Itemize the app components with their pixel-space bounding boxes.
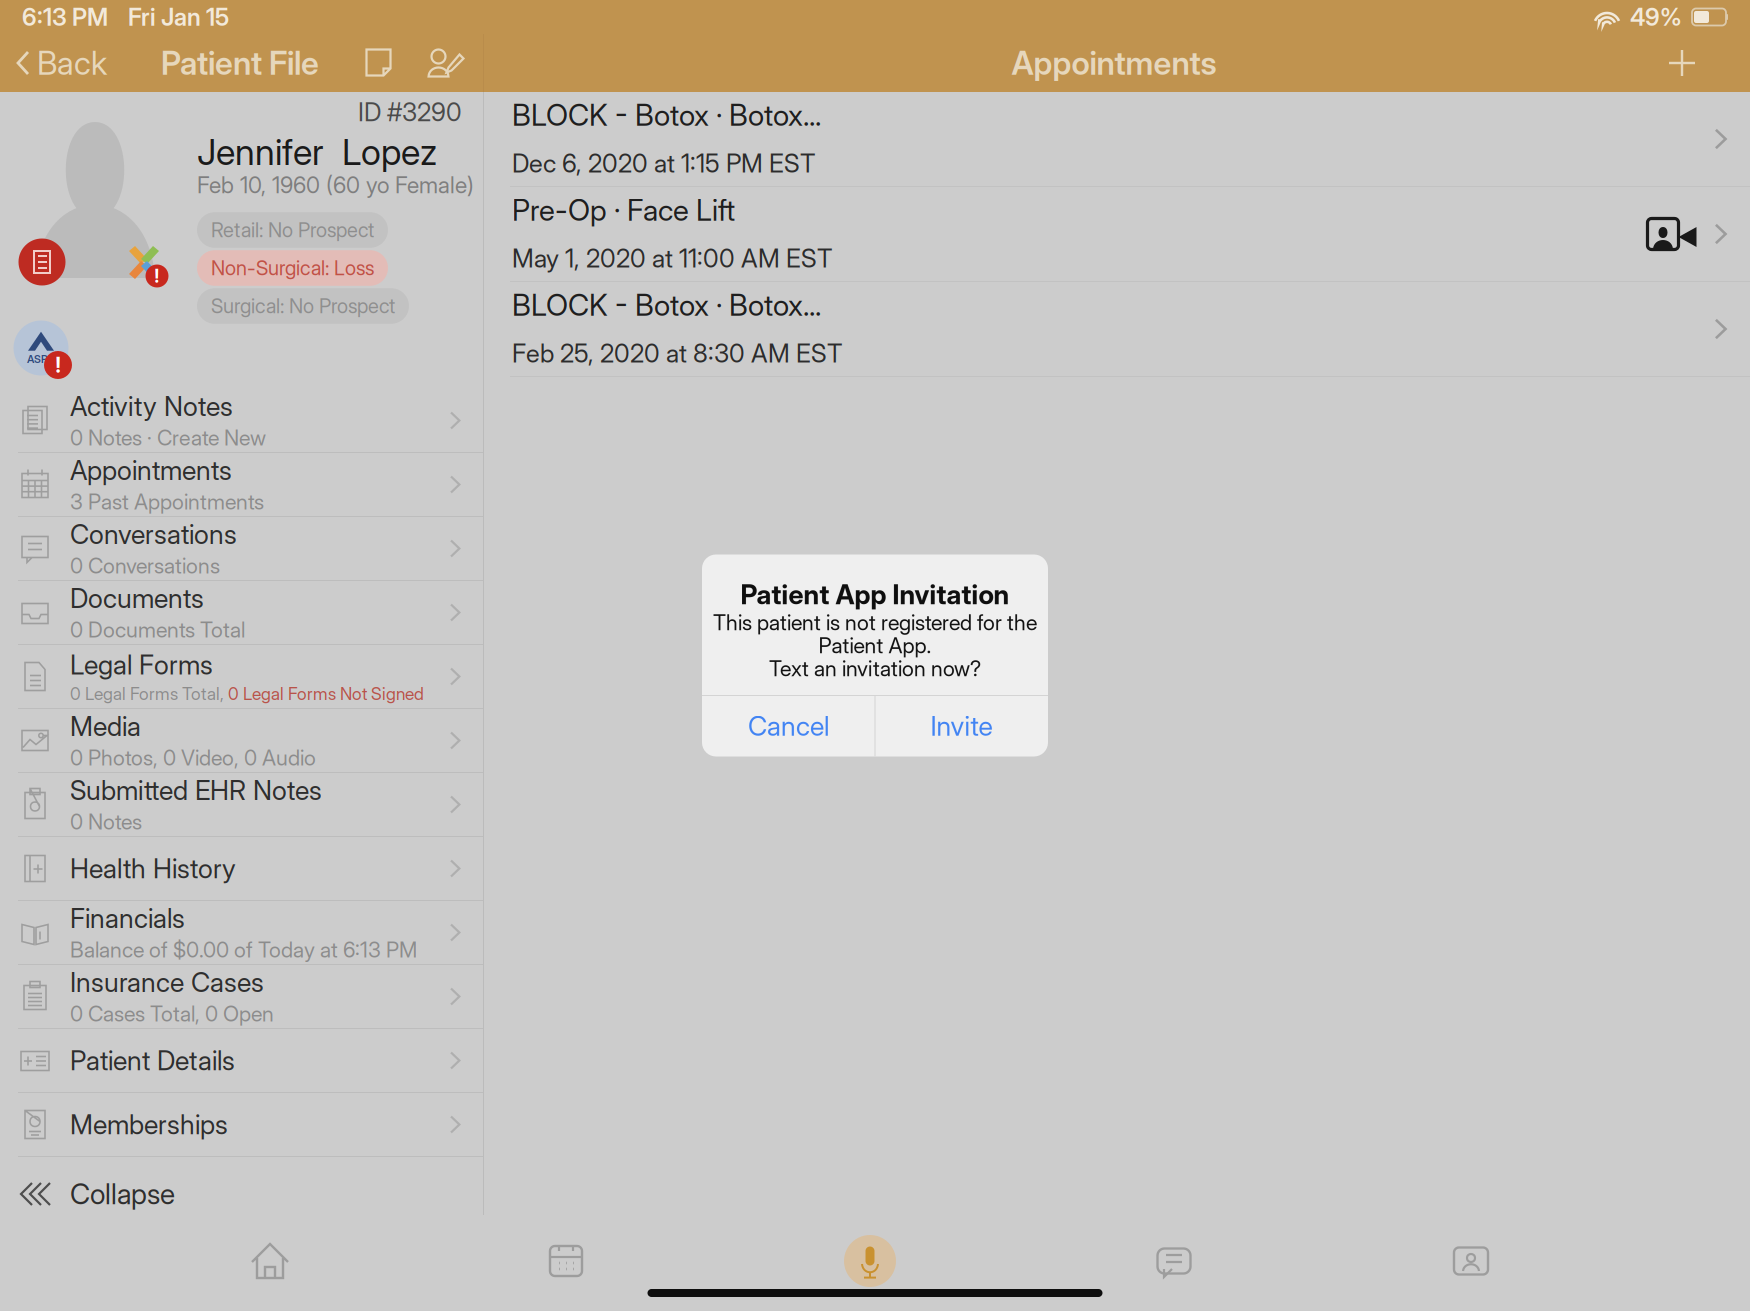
button[interactable]: Invite bbox=[875, 695, 1048, 756]
staticText: 49% bbox=[1630, 3, 1682, 31]
staticText: Text an invitation now? bbox=[769, 656, 981, 681]
button[interactable]: Legal Forms bbox=[0, 645, 483, 709]
staticText: Fri Jan 15 bbox=[128, 3, 229, 31]
staticText: 0 Conversations bbox=[70, 553, 220, 578]
staticText: Feb 10, 1960 (60 yo Female) bbox=[197, 172, 474, 198]
staticText: Surgical: No Prospect bbox=[211, 294, 395, 318]
button[interactable]: Dictate bbox=[780, 1213, 960, 1309]
staticText: Documents bbox=[70, 583, 204, 614]
staticText: Patient Details bbox=[70, 1045, 235, 1076]
button[interactable]: Collapse bbox=[0, 1157, 483, 1231]
button[interactable]: Cancel bbox=[702, 695, 875, 756]
staticText: Financials bbox=[70, 903, 185, 934]
button[interactable]: Media bbox=[0, 709, 483, 773]
button[interactable]: Activity Notes bbox=[0, 389, 483, 453]
staticText: This patient is not registered for the bbox=[713, 610, 1037, 635]
staticText: 3 Past Appointments bbox=[70, 489, 264, 514]
staticText: Health History bbox=[70, 853, 236, 884]
staticText: Balance of $0.00 of Today at 6:13 PM bbox=[70, 937, 417, 962]
staticText: ! bbox=[55, 352, 60, 378]
staticText: BLOCK - Botox · Botox... bbox=[512, 288, 821, 322]
button[interactable]: Conversations bbox=[0, 517, 483, 581]
staticText: Conversations bbox=[70, 519, 237, 550]
button[interactable]: Documents bbox=[0, 581, 483, 645]
button[interactable]: Messages bbox=[1084, 1213, 1264, 1309]
staticText: Patient File bbox=[161, 44, 319, 82]
button[interactable]: Financials bbox=[0, 901, 483, 965]
staticText: Jennifer Lopez bbox=[197, 131, 437, 173]
button[interactable]: Patients bbox=[1381, 1213, 1561, 1309]
staticText: Pre-Op · Face Lift bbox=[512, 193, 735, 227]
staticText: Appointments bbox=[1011, 44, 1216, 82]
staticText: Media bbox=[70, 711, 141, 742]
staticText: Back bbox=[37, 44, 107, 82]
staticText: 0 Documents Total bbox=[70, 617, 245, 642]
staticText: 0 Cases Total, 0 Open bbox=[70, 1001, 274, 1026]
button[interactable]: New note bbox=[351, 35, 407, 91]
staticText: Legal Forms bbox=[70, 649, 213, 680]
button[interactable]: Home bbox=[180, 1213, 360, 1309]
staticText: ID #3290 bbox=[358, 97, 462, 127]
staticText: Feb 25, 2020 at 8:30 AM EST bbox=[512, 338, 842, 368]
staticText: Insurance Cases bbox=[70, 967, 264, 998]
button[interactable]: BLOCK - Botox · Botox... bbox=[484, 282, 1750, 377]
staticText: Patient App. bbox=[818, 633, 931, 658]
staticText: Cancel bbox=[748, 710, 829, 742]
staticText: Memberships bbox=[70, 1109, 228, 1140]
button[interactable]: Memberships bbox=[0, 1093, 483, 1157]
staticText: 0 Notes · Create New bbox=[70, 425, 266, 450]
button[interactable]: Calendar bbox=[476, 1213, 656, 1309]
button[interactable]: Health History bbox=[0, 837, 483, 901]
staticText: 0 Legal Forms Not Signed bbox=[228, 683, 424, 704]
staticText: Patient App Invitation bbox=[740, 579, 1009, 610]
staticText: ! bbox=[154, 265, 159, 287]
staticText: Submitted EHR Notes bbox=[70, 775, 322, 806]
button[interactable]: Pre-Op · Face Lift bbox=[484, 187, 1750, 282]
button[interactable]: Add patient bbox=[415, 35, 477, 91]
staticText: Activity Notes bbox=[70, 391, 233, 422]
staticText: BLOCK - Botox · Botox... bbox=[512, 98, 821, 132]
staticText: May 1, 2020 at 11:00 AM EST bbox=[512, 243, 832, 273]
button[interactable]: Insurance Cases bbox=[0, 965, 483, 1029]
staticText: 0 Notes bbox=[70, 809, 142, 834]
button[interactable]: Back bbox=[16, 35, 146, 91]
staticText: Appointments bbox=[70, 455, 232, 486]
staticText: Non-Surgical: Loss bbox=[211, 256, 374, 280]
staticText: Dec 6, 2020 at 1:15 PM EST bbox=[512, 148, 815, 178]
button[interactable]: BLOCK - Botox · Botox... bbox=[484, 92, 1750, 187]
staticText: 0 Legal Forms Total, bbox=[70, 683, 228, 704]
button[interactable]: Submitted EHR Notes bbox=[0, 773, 483, 837]
staticText: ASPS bbox=[27, 353, 55, 365]
button[interactable]: Appointments bbox=[0, 453, 483, 517]
staticText: Collapse bbox=[70, 1177, 175, 1210]
staticText: Retail: No Prospect bbox=[211, 218, 374, 242]
staticText: 0 Photos, 0 Video, 0 Audio bbox=[70, 745, 316, 770]
staticText: 6:13 PM bbox=[22, 3, 108, 31]
button[interactable]: Add appointment bbox=[1651, 35, 1713, 91]
button[interactable]: Patient Details bbox=[0, 1029, 483, 1093]
staticText: Invite bbox=[930, 710, 992, 742]
